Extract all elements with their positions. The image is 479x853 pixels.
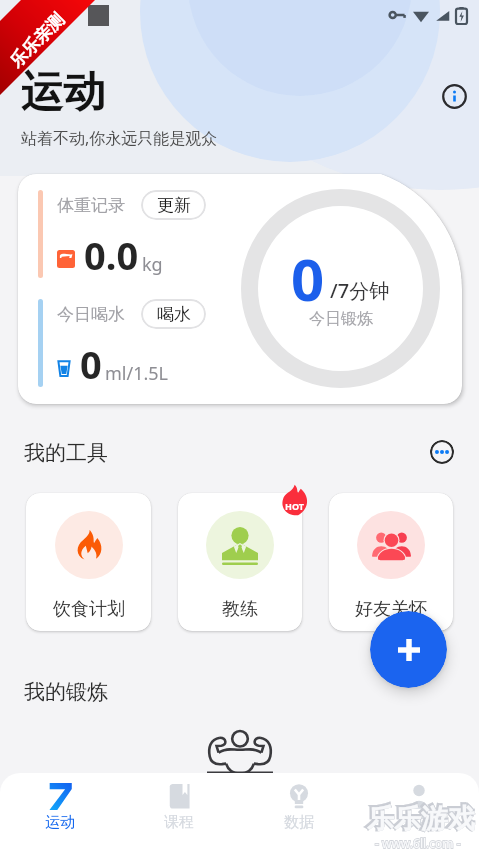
staticText: 今日喝水 [57,304,125,325]
staticText: 乐乐游戏 [366,801,474,835]
staticText: 运动 [21,66,105,119]
staticText: 我的锻炼 [24,679,108,705]
button[interactable]: 数据 [239,773,359,853]
button[interactable]: 更新 [141,190,206,220]
staticText: 今日锻炼 [309,309,373,329]
staticText: 好友关怀 [355,598,427,621]
staticText: - www.6ll.com - [375,835,461,851]
staticText: /7分钟 [330,277,390,304]
staticText: 乐乐游戏 [367,802,475,836]
staticText: 教练 [222,598,258,621]
staticText: 我的 [404,813,434,832]
staticText: - www.6ll.com - [375,835,461,851]
button[interactable]: 喝水 [141,299,206,329]
button[interactable]: More [430,440,454,464]
staticText: 体重记录 [57,195,125,216]
staticText: 饮食计划 [53,598,125,621]
button[interactable]: 运动 [0,773,119,853]
staticText: 站着不动,你永远只能是观众 [21,127,218,149]
button[interactable]: 好友关怀 [329,493,453,631]
button[interactable]: 教练 [178,493,302,631]
button[interactable]: 课程 [119,773,239,853]
staticText: 数据 [284,813,314,832]
staticText: 乐乐亲测 [5,9,68,72]
staticText: HOT [285,500,304,512]
staticText: 0 [291,239,325,318]
button[interactable]: Add [370,611,447,688]
staticText: 0 [80,338,102,390]
staticText: 喝水 [157,304,191,325]
button[interactable]: Info [440,82,468,110]
button[interactable]: 我的 [359,773,479,853]
staticText: 课程 [164,813,194,832]
button[interactable]: 饮食计划 [26,493,151,631]
staticText: 更新 [157,195,191,216]
staticText: kg [142,252,163,277]
staticText: ml/1.5L [105,361,169,386]
staticText: 0.0 [84,229,139,281]
staticText: 运动 [45,813,75,832]
staticText: 我的工具 [24,440,108,464]
